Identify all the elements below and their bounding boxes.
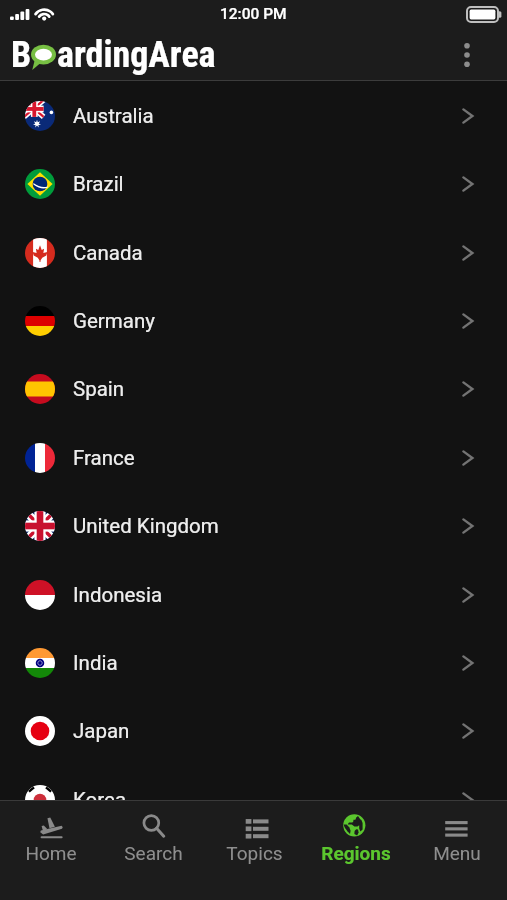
button[interactable]: Brazil — [0, 150, 507, 218]
staticText: Canada — [73, 241, 143, 265]
staticText: Home — [25, 842, 77, 864]
button[interactable]: Canada — [0, 219, 507, 287]
button[interactable]: Regions — [305, 801, 406, 864]
staticText: Regions — [321, 842, 391, 864]
button[interactable]: Korea — [0, 766, 507, 834]
button[interactable]: Menu — [406, 801, 507, 864]
button[interactable]: Germany — [0, 287, 507, 355]
button[interactable]: United Kingdom — [0, 492, 507, 560]
staticText: Indonesia — [73, 583, 163, 607]
staticText: Australia — [73, 104, 154, 128]
staticText: 12:00 PM — [220, 5, 287, 23]
button[interactable]: Australia — [0, 82, 507, 150]
button[interactable]: More options — [447, 35, 487, 75]
staticText: Menu — [433, 842, 481, 864]
staticText: India — [73, 651, 118, 675]
button[interactable]: India — [0, 629, 507, 697]
button[interactable]: France — [0, 424, 507, 492]
staticText: Spain — [73, 377, 125, 401]
button[interactable]: Spain — [0, 355, 507, 423]
staticText: Japan — [73, 719, 130, 743]
staticText: Search — [124, 842, 183, 864]
staticText: France — [73, 446, 135, 470]
staticText: United Kingdom — [73, 514, 219, 538]
button[interactable]: Japan — [0, 697, 507, 765]
button[interactable]: Indonesia — [0, 561, 507, 629]
staticText: Brazil — [73, 172, 124, 196]
staticText: ardingArea — [57, 34, 216, 76]
staticText: B — [11, 34, 32, 76]
staticText: Topics — [226, 842, 283, 864]
button[interactable]: Search — [102, 801, 204, 864]
staticText: Korea — [73, 788, 127, 812]
staticText: Germany — [73, 309, 155, 333]
button[interactable]: Home — [0, 801, 102, 864]
button[interactable]: Topics — [204, 801, 305, 864]
